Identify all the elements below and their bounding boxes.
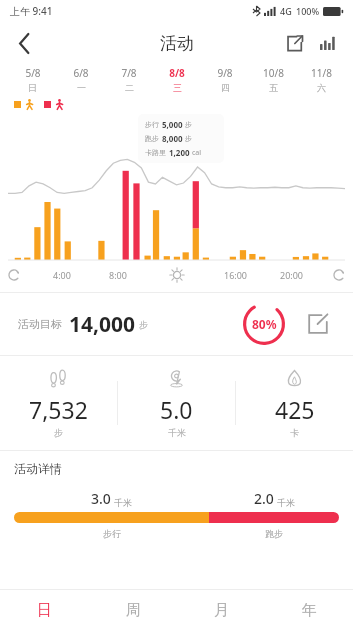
- staticText: 六: [317, 82, 326, 93]
- button[interactable]: 7,532: [0, 356, 117, 450]
- staticText: 10/8: [263, 66, 284, 80]
- button[interactable]: 9/8: [201, 66, 249, 93]
- staticText: 跑步: [145, 134, 159, 143]
- staticText: 步: [185, 134, 192, 143]
- staticText: 千米: [114, 497, 132, 508]
- staticText: 日: [28, 82, 37, 93]
- button[interactable]: 7/8: [105, 66, 153, 93]
- staticText: 三: [173, 82, 182, 93]
- staticText: 16:00: [224, 269, 248, 281]
- staticText: 80%: [252, 316, 277, 332]
- staticText: 步: [185, 120, 192, 129]
- button[interactable]: 8/8: [153, 66, 201, 93]
- staticText: 1,200: [169, 147, 190, 158]
- button[interactable]: 425: [236, 356, 353, 450]
- staticText: 8/8: [169, 66, 185, 80]
- staticText: 一: [77, 82, 86, 93]
- staticText: 步: [139, 319, 148, 330]
- staticText: 月: [214, 601, 229, 620]
- staticText: 9/8: [217, 66, 233, 80]
- button[interactable]: 5/8: [8, 66, 57, 93]
- staticText: 14,000: [69, 310, 136, 339]
- staticText: cal: [192, 148, 202, 158]
- staticText: 千米: [168, 427, 186, 438]
- staticText: 上午 9:41: [10, 4, 53, 18]
- staticText: 卡路里: [145, 148, 166, 157]
- staticText: 8:00: [109, 269, 127, 281]
- staticText: 五: [269, 82, 278, 93]
- staticText: 4G: [280, 5, 292, 17]
- button[interactable]: 年: [265, 590, 353, 630]
- button[interactable]: 11/8: [297, 66, 345, 93]
- staticText: 步行: [103, 528, 121, 539]
- button[interactable]: 周: [89, 590, 177, 630]
- staticText: 步行: [145, 120, 159, 129]
- button[interactable]: 月: [177, 590, 265, 630]
- staticText: 5,000: [162, 119, 183, 130]
- staticText: 日: [37, 601, 52, 620]
- button[interactable]: 日: [0, 590, 89, 630]
- staticText: 5/8: [25, 66, 41, 80]
- staticText: 3.0: [91, 489, 111, 508]
- staticText: 千米: [277, 497, 295, 508]
- staticText: 6/8: [73, 66, 89, 80]
- staticText: 活动目标: [18, 317, 62, 331]
- staticText: 活动详情: [14, 461, 62, 476]
- staticText: 425: [275, 394, 315, 425]
- staticText: 活动: [160, 33, 194, 54]
- staticText: 5.0: [160, 394, 193, 425]
- button[interactable]: 6/8: [57, 66, 105, 93]
- staticText: 跑步: [265, 528, 283, 539]
- button[interactable]: Statistics: [311, 26, 345, 60]
- staticText: 二: [125, 82, 134, 93]
- staticText: 年: [302, 601, 317, 620]
- staticText: 卡: [290, 427, 299, 438]
- staticText: 7/8: [121, 66, 137, 80]
- staticText: 20:00: [280, 269, 304, 281]
- button[interactable]: Share: [277, 26, 311, 60]
- staticText: 7,532: [29, 394, 88, 425]
- staticText: 4:00: [53, 269, 71, 281]
- button[interactable]: 5.0: [118, 356, 235, 450]
- staticText: 2.0: [254, 489, 274, 508]
- staticText: 四: [221, 82, 230, 93]
- staticText: 100%: [296, 5, 320, 17]
- button[interactable]: Edit goal: [301, 307, 335, 341]
- staticText: 11/8: [311, 66, 332, 80]
- staticText: 8,000: [162, 133, 183, 144]
- staticText: 步: [54, 427, 63, 438]
- staticText: 周: [126, 601, 141, 620]
- button[interactable]: 10/8: [249, 66, 297, 93]
- button[interactable]: Back: [4, 23, 44, 63]
